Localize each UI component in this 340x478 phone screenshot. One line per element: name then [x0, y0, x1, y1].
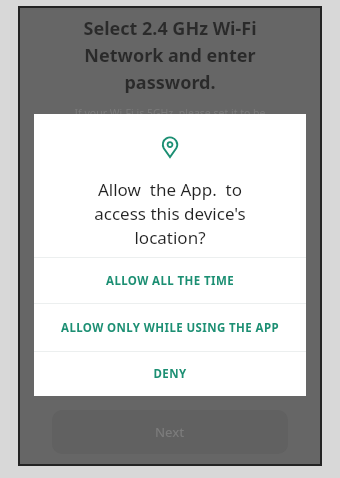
other: Location — [161, 136, 179, 158]
button[interactable]: Password field — [20, 240, 320, 266]
staticText: 👁 — [284, 247, 298, 260]
staticText: DENY — [153, 366, 187, 382]
other: Password field — [42, 247, 60, 259]
staticText: ALLOW ONLY WHILE USING THE APP — [61, 320, 279, 336]
button[interactable]: DENY — [34, 352, 306, 396]
staticText: Password — [72, 244, 131, 262]
staticText: Next — [155, 423, 185, 441]
staticText: If your Wi-Fi is 5GHz, please set it to … — [20, 106, 320, 120]
staticText: Allow the App. to access this device's l… — [48, 178, 292, 249]
button[interactable]: ALLOW ALL THE TIME — [34, 258, 306, 303]
staticText: ALLOW ALL THE TIME — [106, 273, 234, 289]
button[interactable]: ALLOW ONLY WHILE USING THE APP — [34, 304, 306, 351]
staticText: Select 2.4 GHz Wi-Fi Network and enter p… — [34, 16, 306, 94]
